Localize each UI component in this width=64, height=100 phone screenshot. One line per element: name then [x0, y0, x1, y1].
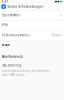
staticText: Eigenschaften — [2, 13, 21, 17]
staticText: über USB teilen — [2, 73, 25, 77]
staticText: Geräte & Verbindungen — [7, 5, 43, 8]
staticText: 9:41 — [1, 0, 8, 3]
button[interactable]: Geräte & Verbindungen — [0, 3, 64, 10]
button[interactable]: Verbindungsmodus — [0, 30, 64, 40]
staticText: Mobilfunknetz — [2, 55, 23, 58]
staticText: WLAN — [2, 43, 10, 47]
button[interactable]: VPN — [0, 20, 64, 30]
staticText: Hotspot — [51, 33, 62, 37]
staticText: USB-Tethering — [2, 64, 22, 67]
staticText: Internetverbindung des Telefons — [2, 69, 50, 73]
staticText: VPN — [2, 23, 8, 27]
staticText: Verbindungsmodus — [2, 33, 30, 37]
button[interactable]: Eigenschaften — [0, 10, 64, 20]
